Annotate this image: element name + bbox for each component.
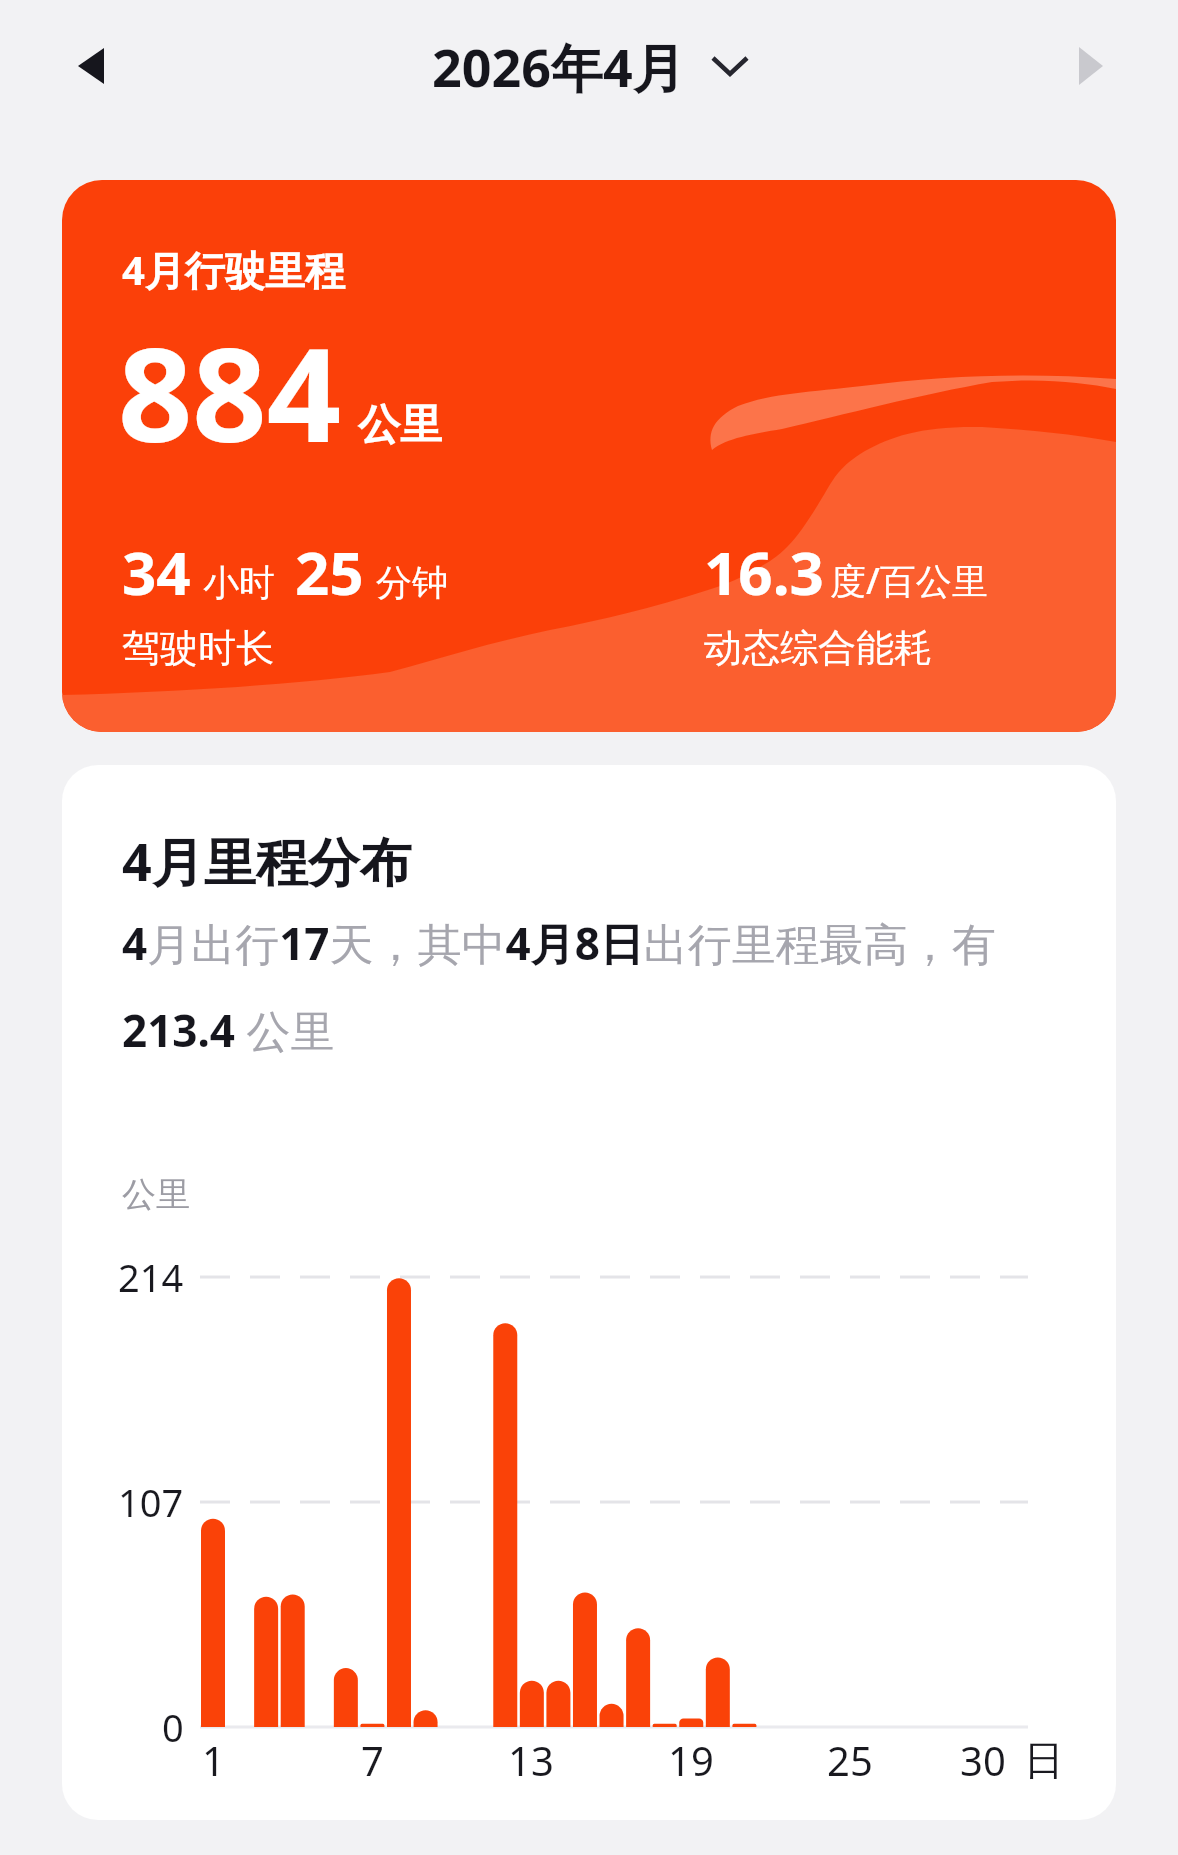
staticText: 884 — [118, 303, 342, 480]
staticText: 7 — [361, 1733, 384, 1787]
staticText: 4月行驶里程 — [122, 242, 345, 297]
staticText: 107 — [118, 1476, 184, 1528]
staticText: 分钟 — [376, 560, 448, 605]
staticText: 13 — [508, 1733, 554, 1787]
button[interactable]: 2026年4月 — [432, 28, 747, 104]
button[interactable] — [1058, 28, 1124, 104]
staticText: 公里 — [122, 1173, 190, 1216]
staticText: 4月里程分布 — [122, 825, 412, 896]
staticText: 30 — [960, 1733, 1006, 1787]
staticText: 2026年4月 — [432, 31, 685, 102]
staticText: 日 — [1024, 1735, 1064, 1785]
staticText: 1 — [202, 1733, 225, 1787]
staticText: 214 — [118, 1251, 184, 1303]
staticText: 动态综合能耗 — [704, 624, 932, 672]
staticText: 25 — [827, 1733, 873, 1787]
staticText: 小时 — [203, 560, 275, 605]
staticText: 0 — [162, 1701, 184, 1753]
staticText: 驾驶时长 — [122, 624, 274, 672]
staticText: 25 — [295, 531, 364, 613]
staticText: 度/百公里 — [830, 556, 988, 605]
button[interactable]: 4月行驶里程 — [62, 180, 1116, 732]
button[interactable]: 4月里程分布 — [62, 765, 1116, 1820]
staticText: 19 — [668, 1733, 714, 1787]
staticText: 公里 — [358, 399, 442, 452]
staticText: 4月出行17天，其中4月8日出行里程最高，有 213.4 公里 — [122, 913, 996, 1060]
staticText: 16.3 — [704, 531, 824, 613]
staticText: 34 — [122, 531, 191, 613]
button[interactable] — [58, 28, 124, 104]
